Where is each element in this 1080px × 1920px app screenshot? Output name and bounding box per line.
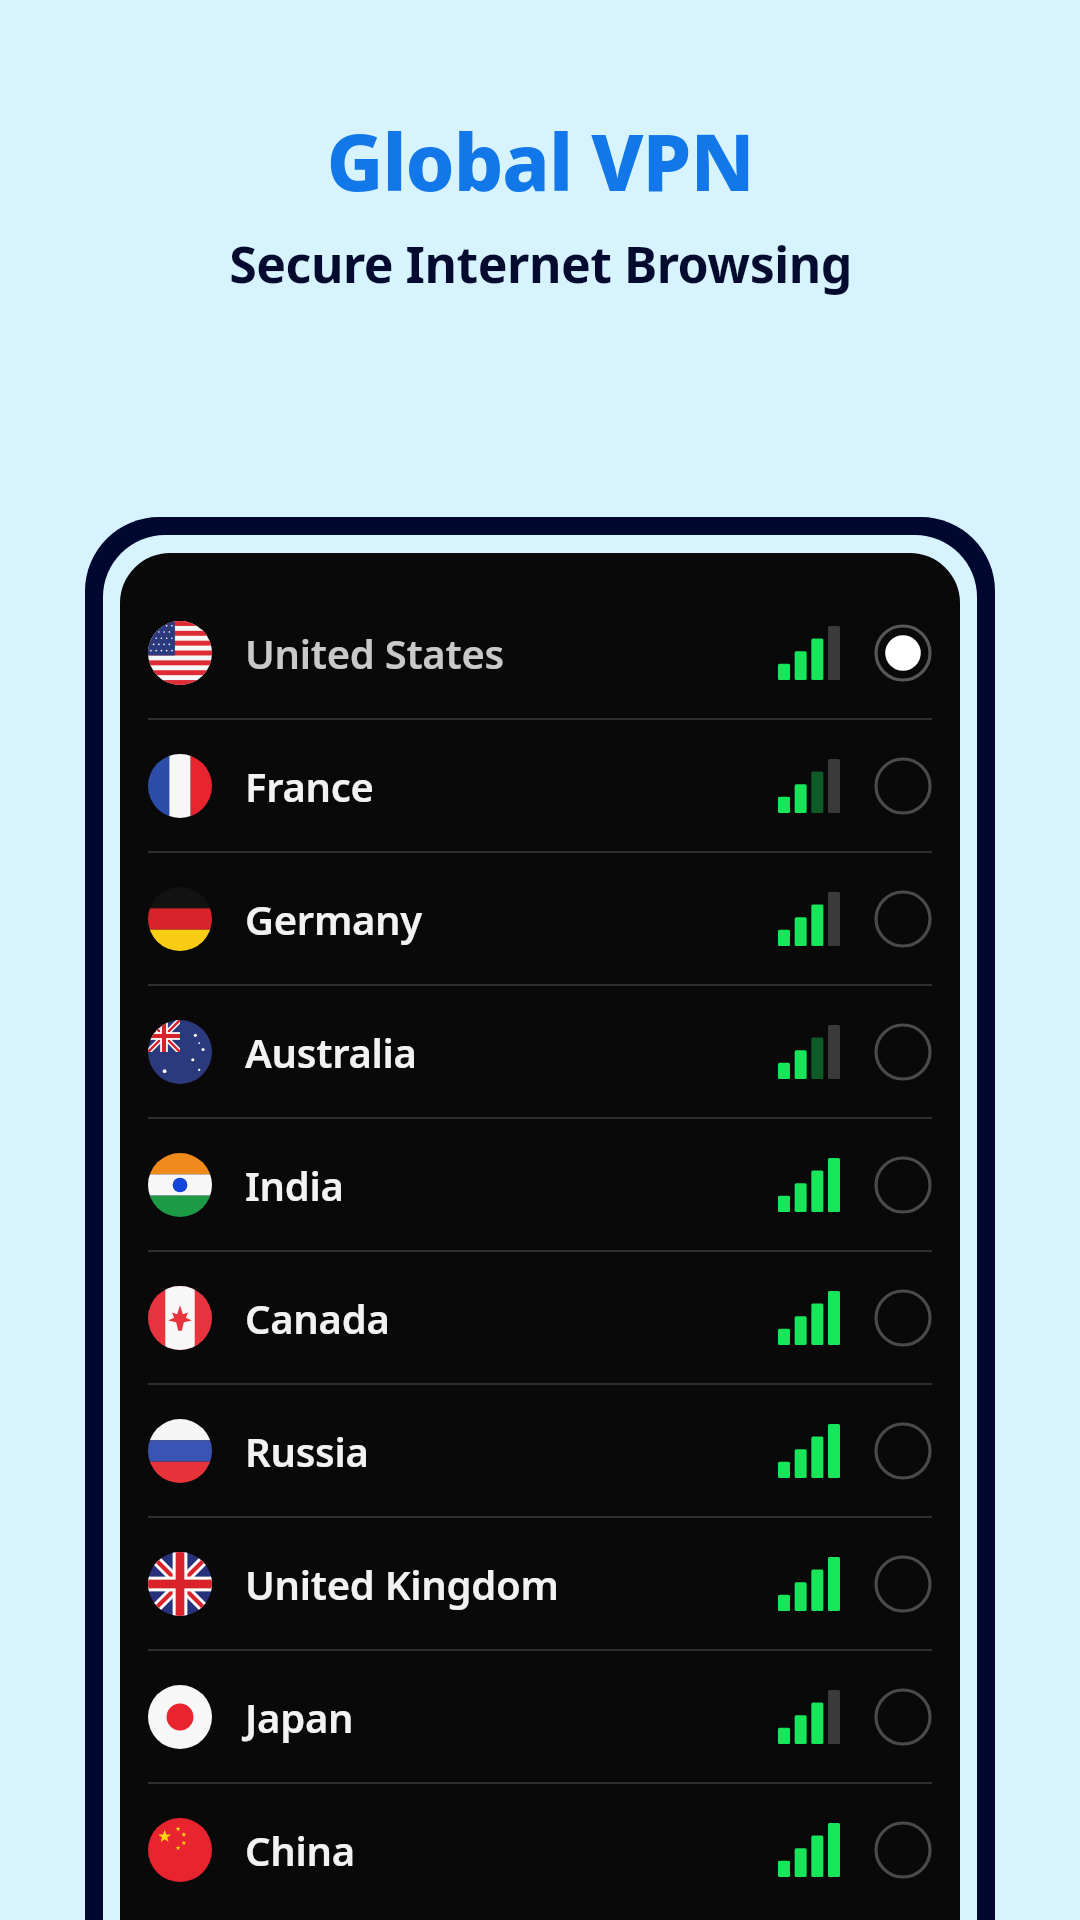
staticText: China [245, 1823, 355, 1877]
staticText: France [245, 759, 374, 813]
button[interactable]: United States [120, 587, 960, 718]
staticText: Japan [245, 1690, 354, 1744]
button[interactable]: United Kingdom [120, 1518, 960, 1649]
button[interactable]: Select Australia [874, 1023, 932, 1081]
button[interactable]: Select Russia [874, 1422, 932, 1480]
staticText: Canada [245, 1291, 390, 1345]
staticText: United States [245, 626, 504, 680]
button[interactable]: Select United Kingdom [874, 1555, 932, 1613]
button[interactable]: India [120, 1119, 960, 1250]
button[interactable]: Select Germany [874, 890, 932, 948]
button[interactable]: Select Japan [874, 1688, 932, 1746]
staticText: Australia [245, 1025, 417, 1079]
button[interactable]: Select India [874, 1156, 932, 1214]
staticText: United Kingdom [245, 1557, 559, 1611]
staticText: India [245, 1158, 344, 1212]
staticText: Germany [245, 892, 422, 946]
button[interactable]: Japan [120, 1651, 960, 1782]
button[interactable]: Australia [120, 986, 960, 1117]
button[interactable]: Canada [120, 1252, 960, 1383]
staticText: Global VPN [326, 108, 754, 214]
staticText: Secure Internet Browsing [229, 230, 852, 298]
button[interactable]: Select Canada [874, 1289, 932, 1347]
button[interactable]: Germany [120, 853, 960, 984]
button[interactable]: Select United States [874, 624, 932, 682]
staticText: Russia [245, 1424, 369, 1478]
button[interactable]: Russia [120, 1385, 960, 1516]
button[interactable]: Select France [874, 757, 932, 815]
button[interactable]: Select China [874, 1821, 932, 1879]
button[interactable]: China [120, 1784, 960, 1915]
button[interactable]: France [120, 720, 960, 851]
